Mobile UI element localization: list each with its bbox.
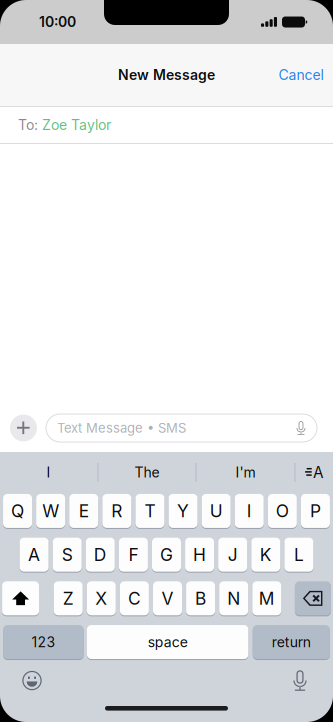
button[interactable]: G xyxy=(152,537,181,572)
staticText: H xyxy=(193,544,206,565)
staticText: Z xyxy=(63,588,74,609)
button[interactable]: O xyxy=(268,493,297,528)
staticText: G xyxy=(160,544,173,565)
button[interactable]: B xyxy=(186,581,215,616)
staticText: 10:00 xyxy=(39,13,76,30)
staticText: W xyxy=(42,500,59,521)
button[interactable]: D xyxy=(86,537,115,572)
staticText: Cancel xyxy=(278,66,323,83)
staticText: T xyxy=(144,500,155,521)
button[interactable]: X xyxy=(87,581,116,616)
button[interactable]: Emoji xyxy=(12,659,52,701)
button[interactable]: U xyxy=(202,493,231,528)
button[interactable]: C xyxy=(120,581,149,616)
button[interactable]: P xyxy=(301,493,330,528)
staticText: E xyxy=(79,500,89,521)
staticText: N xyxy=(227,588,240,609)
button[interactable]: R xyxy=(102,493,131,528)
staticText: B xyxy=(195,588,206,609)
button[interactable]: H xyxy=(185,537,214,572)
button[interactable]: Cancel xyxy=(273,55,329,95)
button[interactable]: To: xyxy=(0,107,333,143)
staticText: M xyxy=(259,588,275,609)
button[interactable]: Y xyxy=(169,493,198,528)
staticText: Y xyxy=(177,500,189,521)
button[interactable]: Add attachment xyxy=(10,414,37,441)
staticText: Zoe Taylor xyxy=(42,116,111,133)
staticText: L xyxy=(294,544,304,565)
staticText: Text Message • SMS xyxy=(57,420,186,436)
staticText: C xyxy=(128,588,141,609)
staticText: 123 xyxy=(31,634,55,650)
button[interactable]: Dictate xyxy=(280,659,320,701)
staticText: I xyxy=(247,500,252,521)
button[interactable]: The xyxy=(98,451,195,493)
button[interactable]: Delete xyxy=(295,581,331,616)
button[interactable]: Dictate xyxy=(290,414,312,441)
staticText: A xyxy=(28,544,40,565)
button[interactable]: W xyxy=(36,493,65,528)
staticText: O xyxy=(276,500,289,521)
button[interactable]: K xyxy=(251,537,280,572)
button[interactable]: F xyxy=(119,537,148,572)
staticText: return xyxy=(272,634,311,650)
staticText: U xyxy=(210,500,223,521)
staticText: The xyxy=(134,464,159,481)
staticText: P xyxy=(310,500,321,521)
button[interactable]: Text formatting xyxy=(295,451,333,493)
button[interactable]: 123 xyxy=(3,624,84,659)
staticText: To: xyxy=(18,116,42,133)
button[interactable]: V xyxy=(153,581,182,616)
button[interactable]: return xyxy=(253,624,330,659)
staticText: F xyxy=(128,544,138,565)
staticText: A xyxy=(313,463,324,482)
button[interactable]: S xyxy=(53,537,82,572)
button[interactable]: Shift xyxy=(2,581,39,616)
staticText: J xyxy=(228,544,238,565)
button[interactable]: space xyxy=(87,624,248,659)
button[interactable]: I xyxy=(0,451,97,493)
staticText: New Message xyxy=(118,66,215,83)
button[interactable]: M xyxy=(252,581,281,616)
staticText: I xyxy=(46,464,50,481)
staticText: R xyxy=(111,500,122,521)
staticText: D xyxy=(94,544,107,565)
button[interactable]: L xyxy=(284,537,313,572)
button[interactable]: Q xyxy=(3,493,32,528)
staticText: S xyxy=(62,544,73,565)
staticText: V xyxy=(161,588,173,609)
staticText: K xyxy=(260,544,272,565)
button[interactable]: N xyxy=(219,581,248,616)
button[interactable]: I'm xyxy=(196,451,294,493)
button[interactable]: I xyxy=(235,493,264,528)
button[interactable]: T xyxy=(135,493,164,528)
staticText: Q xyxy=(11,500,24,521)
button[interactable]: Z xyxy=(54,581,83,616)
button[interactable]: E xyxy=(69,493,98,528)
staticText: space xyxy=(148,634,188,650)
button[interactable]: A xyxy=(20,537,49,572)
staticText: I'm xyxy=(235,464,255,481)
staticText: X xyxy=(95,588,107,609)
button[interactable]: J xyxy=(218,537,247,572)
